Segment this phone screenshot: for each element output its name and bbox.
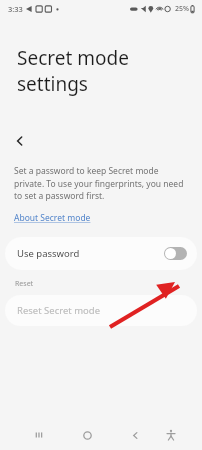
staticText: Reset xyxy=(15,279,34,289)
button[interactable]: Recent apps xyxy=(24,420,54,450)
staticText: Reset Secret mode xyxy=(17,304,101,317)
staticText: Use password xyxy=(17,247,80,260)
button[interactable]: Use password xyxy=(5,237,197,270)
button[interactable]: Reset Secret mode xyxy=(5,295,197,326)
staticText: Set a password to keep Secret mode priva… xyxy=(14,165,186,201)
staticText: 3:33 xyxy=(8,4,23,14)
button[interactable]: Use password toggle xyxy=(164,247,187,260)
staticText: Secret mode settings xyxy=(17,45,202,97)
staticText: About Secret mode xyxy=(14,212,91,224)
button[interactable]: About Secret mode xyxy=(14,212,91,224)
button[interactable]: Back xyxy=(6,127,34,155)
button[interactable]: Back xyxy=(120,420,150,450)
button[interactable]: Accessibility xyxy=(156,420,186,450)
staticText: 25% xyxy=(175,4,189,14)
button[interactable]: Home xyxy=(72,420,102,450)
